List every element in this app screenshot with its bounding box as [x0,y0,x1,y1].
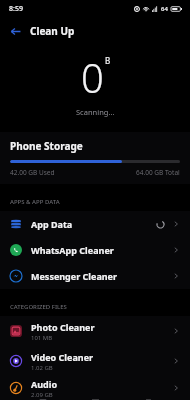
staticText: 0 [81,50,104,104]
staticText: 8:59 [9,4,23,14]
staticText: 42.00 GB Used [10,168,55,177]
staticText: 1.02 GB [31,364,53,372]
button[interactable]: Messenger Cleaner [0,263,190,289]
staticText: CATEGORIZED FILES [10,303,67,311]
staticText: Messenger Cleaner [31,270,118,282]
staticText: 2.09 GB [31,391,53,399]
staticText: 101 MB [31,334,53,342]
staticText: Photo Cleaner [31,321,95,333]
staticText: Audio [31,378,58,390]
staticText: 64 [161,5,168,13]
staticText: Scanning... [76,107,115,117]
staticText: B [105,55,111,66]
button[interactable]: Back [6,22,24,40]
staticText: Video Cleaner [31,351,94,363]
button[interactable]: App Data [0,211,190,237]
staticText: WhatsApp Cleaner [31,244,114,256]
button[interactable]: WhatsApp Cleaner [0,237,190,263]
staticText: APPS & APP DATA [10,198,60,206]
button[interactable]: Photo Cleaner [0,316,190,346]
staticText: Clean Up [30,24,75,38]
button[interactable]: Video Cleaner [0,346,190,376]
staticText: App Data [31,218,73,230]
staticText: 64.00 GB Total [136,168,180,177]
button[interactable]: Audio [0,376,190,400]
staticText: Phone Storage [10,139,83,153]
